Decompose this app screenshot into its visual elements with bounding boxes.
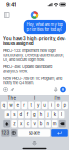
staticText: The [7, 96, 15, 101]
staticText: i [51, 103, 52, 108]
staticText: I [34, 96, 35, 101]
staticText: y [37, 103, 39, 108]
button[interactable]: Shift [3, 120, 10, 127]
staticText: p [63, 103, 66, 108]
staticText: k [54, 112, 56, 117]
staticText: w [9, 103, 12, 108]
staticText: v [33, 121, 35, 126]
button[interactable]: I [23, 95, 46, 101]
button[interactable]: m [52, 120, 58, 127]
button[interactable]: c [25, 120, 31, 127]
button[interactable]: Emoji [11, 129, 17, 137]
staticText: 9:41 [6, 1, 16, 8]
button[interactable]: r [21, 101, 27, 109]
button[interactable]: s [11, 111, 17, 118]
staticText: s [13, 112, 15, 117]
staticText: space [28, 130, 39, 135]
button[interactable]: p [62, 101, 68, 109]
staticText: d [19, 112, 22, 117]
button[interactable]: 123 [1, 129, 10, 137]
staticText: New PROJ-789 on Tic Program, and notify … [3, 76, 62, 85]
button[interactable]: d [18, 111, 24, 118]
button[interactable]: w [8, 101, 14, 109]
button[interactable]: Attach file [9, 87, 15, 92]
button[interactable]: j [45, 111, 51, 118]
button[interactable]: space [18, 129, 50, 137]
staticText: r [23, 103, 25, 108]
staticText: j [48, 112, 49, 117]
button[interactable]: Delete [59, 120, 66, 127]
button[interactable]: k [52, 111, 58, 118]
staticText: u [43, 103, 46, 108]
button[interactable]: f [25, 111, 31, 118]
staticText: t [31, 103, 32, 108]
button[interactable]: n [45, 120, 51, 127]
button[interactable]: q [1, 101, 7, 109]
button[interactable]: o [55, 101, 61, 109]
button[interactable]: Return [51, 129, 68, 137]
button[interactable]: Dictation [32, 141, 37, 146]
button[interactable]: x [18, 120, 24, 127]
button[interactable]: Add [2, 87, 9, 92]
staticText: m [53, 121, 57, 126]
staticText: z [13, 121, 15, 126]
staticText: PROJ-123: Implement new login functional… [3, 48, 64, 62]
staticText: I'm [54, 96, 60, 101]
button[interactable]: b [38, 120, 44, 127]
button[interactable]: t [28, 101, 34, 109]
staticText: h [40, 112, 43, 117]
button[interactable]: i [49, 101, 54, 109]
staticText: g [33, 112, 36, 117]
button[interactable]: Sidebar [2, 10, 11, 20]
button[interactable]: e [15, 101, 20, 109]
staticText: x [20, 121, 22, 126]
staticText: f [27, 112, 29, 117]
staticText: a [6, 112, 8, 117]
staticText: o [57, 103, 60, 108]
staticText: Hey, what are my top priorities for toda… [26, 22, 63, 32]
staticText: PROJ-456: Update dashboard analytics vie… [3, 64, 52, 74]
staticText: You have 3 high-priority, dev-issues ass… [3, 36, 66, 46]
button[interactable]: y [35, 101, 41, 109]
button[interactable]: Send [59, 87, 66, 92]
button[interactable]: v [32, 120, 37, 127]
staticText: n [47, 121, 50, 126]
button[interactable]: z [11, 120, 17, 127]
button[interactable]: a [4, 111, 10, 118]
staticText: b [40, 121, 43, 126]
button[interactable]: l [59, 111, 64, 118]
staticText: c [27, 121, 29, 126]
staticText: 123 [1, 130, 9, 135]
button[interactable]: Voice input [52, 87, 59, 92]
staticText: l [61, 112, 62, 117]
staticText: e [17, 103, 19, 108]
button[interactable]: g [32, 111, 37, 118]
button[interactable]: I'm [46, 95, 69, 101]
button[interactable]: The [0, 95, 23, 101]
staticText: q [2, 103, 5, 108]
button[interactable]: u [42, 101, 47, 109]
button[interactable]: h [38, 111, 44, 118]
